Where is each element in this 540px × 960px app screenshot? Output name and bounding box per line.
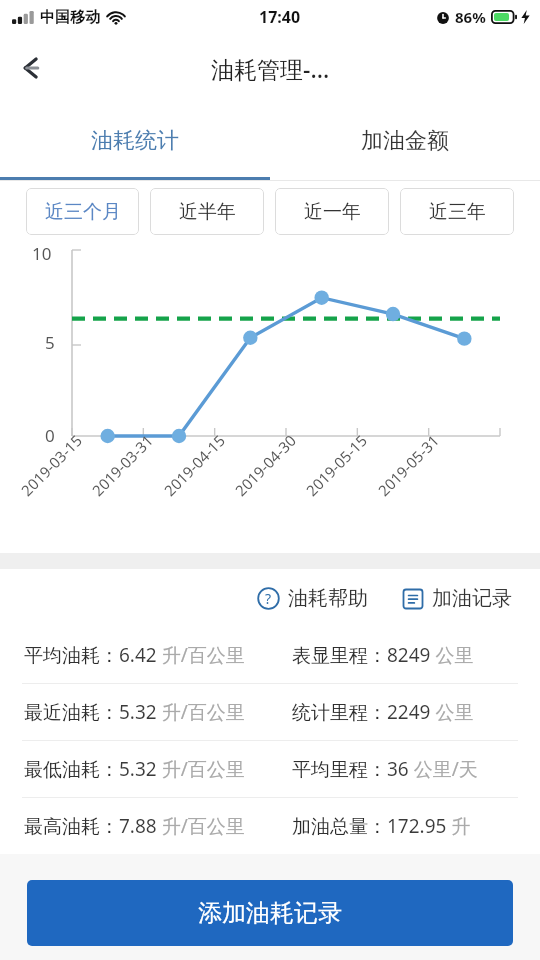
staticText: 油耗帮助 — [288, 586, 368, 611]
staticText: 统计里程：2249 公里 — [292, 699, 474, 725]
staticText: 2019-03-31 — [87, 430, 157, 500]
staticText: 加油记录 — [432, 586, 512, 611]
button[interactable]: ? — [253, 580, 372, 617]
staticText: 0 — [45, 424, 55, 447]
button[interactable]: 近三个月 — [26, 188, 139, 235]
staticText: 2019-05-31 — [373, 430, 443, 500]
staticText: 10 — [32, 242, 52, 265]
button[interactable]: 加油记录 — [398, 580, 516, 617]
staticText: 近三年 — [429, 200, 486, 224]
staticText: 近三个月 — [45, 200, 121, 224]
button[interactable]: 油耗统计 — [0, 102, 270, 180]
button[interactable]: 近一年 — [275, 188, 389, 235]
button[interactable]: 近半年 — [150, 188, 264, 235]
staticText: 平均里程：36 公里/天 — [292, 756, 478, 782]
staticText: 5 — [45, 331, 55, 354]
button[interactable]: 加油金额 — [270, 102, 540, 180]
staticText: 油耗管理-... — [211, 53, 330, 84]
staticText: 2019-03-15 — [16, 430, 86, 500]
staticText: 中国移动 — [40, 8, 100, 27]
staticText: 最低油耗：5.32 升/百公里 — [24, 756, 245, 782]
staticText: 加油总量：172.95 升 — [292, 813, 471, 839]
button[interactable]: Back — [6, 39, 64, 97]
staticText: 平均油耗：6.42 升/百公里 — [24, 642, 245, 668]
staticText: 近一年 — [304, 200, 361, 224]
staticText: 表显里程：8249 公里 — [292, 642, 474, 668]
staticText: ? — [265, 589, 272, 608]
staticText: 2019-04-15 — [159, 430, 229, 500]
staticText: 2019-04-30 — [230, 430, 300, 500]
staticText: 2019-05-15 — [301, 430, 371, 500]
staticText: 最近油耗：5.32 升/百公里 — [24, 699, 245, 725]
staticText: 近半年 — [179, 200, 236, 224]
button[interactable]: 近三年 — [400, 188, 514, 235]
staticText: 最高油耗：7.88 升/百公里 — [24, 813, 245, 839]
button[interactable]: 添加油耗记录 — [27, 880, 513, 946]
staticText: 油耗统计 — [91, 127, 179, 155]
staticText: 添加油耗记录 — [198, 898, 342, 928]
staticText: 17:40 — [259, 6, 301, 28]
staticText: 86% — [455, 7, 486, 27]
staticText: 加油金额 — [361, 127, 449, 155]
